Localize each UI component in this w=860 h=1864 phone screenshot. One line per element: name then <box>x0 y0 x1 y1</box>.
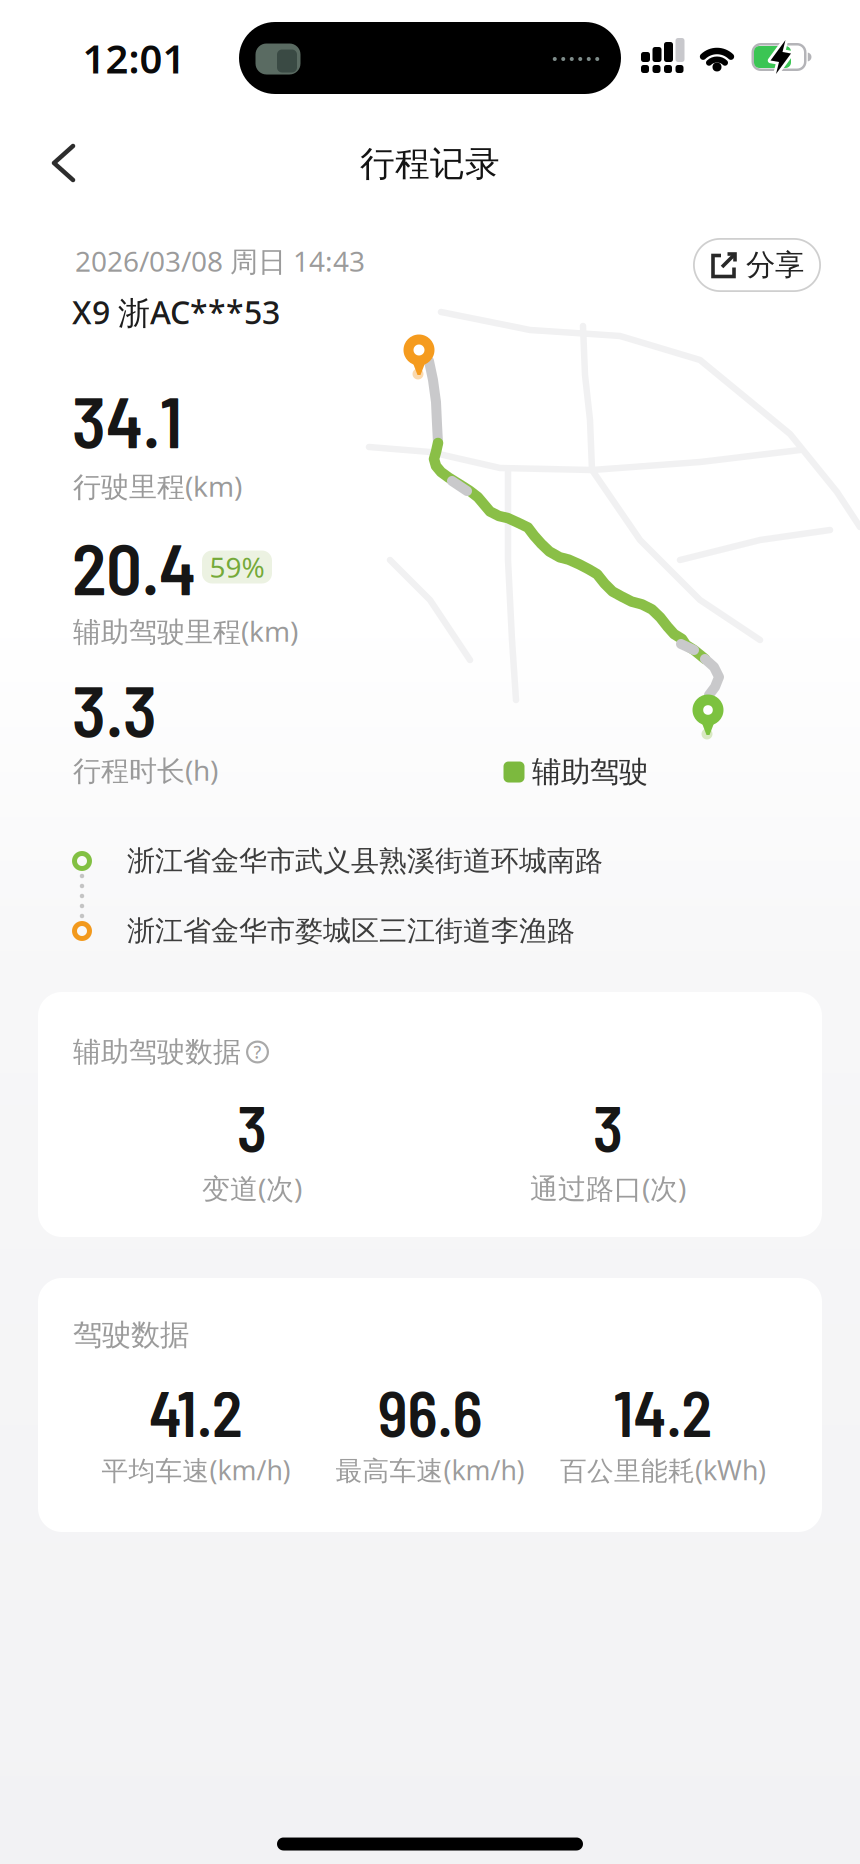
staticText: 辅助驾驶数据 <box>73 1035 241 1069</box>
staticText: 最高车速(km/h) <box>335 1452 524 1488</box>
staticText: 12:01 <box>82 31 185 84</box>
staticText: 59% <box>209 548 264 586</box>
staticText: 辅助驾驶 <box>532 754 648 790</box>
staticText: 96.6 <box>377 1374 482 1450</box>
button[interactable]: 帮助 <box>246 1040 269 1063</box>
staticText: 3 <box>593 1089 623 1165</box>
staticText: 分享 <box>746 247 804 283</box>
staticText: ? <box>253 1040 261 1063</box>
staticText: 3 <box>237 1089 267 1165</box>
staticText: 3.3 <box>72 667 157 751</box>
staticText: 2026/03/08 周日 14:43 <box>75 242 365 280</box>
staticText: 行程时长(h) <box>73 751 218 789</box>
staticText: 浙江省金华市武义县熟溪街道环城南路 <box>127 844 603 878</box>
staticText: 通过路口(次) <box>530 1169 686 1207</box>
staticText: 行程记录 <box>360 143 500 185</box>
staticText: 20.4 <box>72 525 196 609</box>
staticText: 34.1 <box>72 378 182 462</box>
staticText: 辅助驾驶里程(km) <box>73 612 298 650</box>
staticText: X9 浙AC***53 <box>72 291 280 333</box>
staticText: 平均车速(km/h) <box>101 1452 290 1488</box>
staticText: 百公里能耗(kWh) <box>560 1452 766 1488</box>
staticText: 浙江省金华市婺城区三江街道李渔路 <box>127 914 575 948</box>
staticText: 驾驶数据 <box>73 1317 189 1353</box>
staticText: 41.2 <box>149 1374 243 1450</box>
staticText: 变道(次) <box>202 1169 302 1207</box>
button[interactable]: 分享 <box>693 238 821 292</box>
staticText: 行驶里程(km) <box>73 467 242 505</box>
button[interactable]: Back <box>35 135 91 191</box>
staticText: 14.2 <box>613 1374 712 1450</box>
